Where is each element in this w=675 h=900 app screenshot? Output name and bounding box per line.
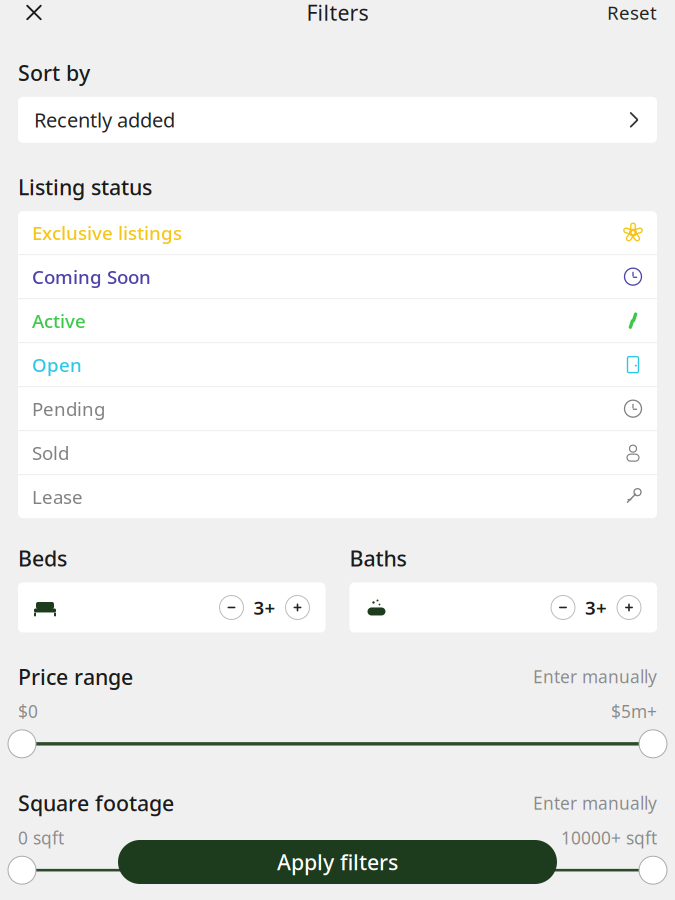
staticText: 10000+ sqft — [561, 826, 657, 849]
staticText: Exclusive listings — [32, 220, 182, 245]
staticText: Recently added — [34, 106, 175, 133]
staticText: $5m+ — [611, 700, 657, 723]
button[interactable]: Open — [18, 343, 657, 386]
staticText: Baths — [349, 544, 406, 572]
staticText: Square footage — [18, 789, 174, 817]
button[interactable]: Apply filters — [118, 840, 557, 884]
button[interactable]: Enter manually — [533, 665, 657, 688]
button[interactable]: Active — [18, 299, 657, 342]
staticText: Enter manually — [533, 665, 657, 688]
button[interactable]: Recently added — [18, 97, 657, 143]
button[interactable]: Coming Soon — [18, 255, 657, 298]
staticText: Enter manually — [533, 791, 657, 814]
staticText: Filters — [306, 0, 368, 27]
staticText: $0 — [18, 700, 38, 723]
button[interactable]: Sold — [18, 431, 657, 474]
staticText: Reset — [607, 0, 657, 25]
button[interactable]: Enter manually — [533, 791, 657, 814]
staticText: Sort by — [18, 58, 90, 87]
button[interactable]: Pending — [18, 387, 657, 430]
button[interactable]: Decrease — [549, 593, 577, 621]
staticText: Apply filters — [277, 848, 398, 876]
button[interactable]: Close — [12, 0, 56, 34]
staticText: Open — [32, 352, 82, 377]
button[interactable]: Decrease — [217, 593, 245, 621]
staticText: Price range — [18, 662, 133, 691]
staticText: Lease — [32, 484, 83, 509]
staticText: Pending — [32, 396, 105, 421]
button[interactable]: Exclusive listings — [18, 211, 657, 254]
button[interactable]: Increase — [283, 593, 311, 621]
button[interactable]: Increase — [615, 593, 643, 621]
staticText: Active — [32, 308, 86, 333]
staticText: Beds — [18, 544, 67, 572]
staticText: 0 sqft — [18, 826, 64, 849]
staticText: Sold — [32, 440, 69, 465]
staticText: Coming Soon — [32, 264, 151, 289]
staticText: 3+ — [253, 595, 275, 620]
button[interactable]: Reset — [601, 0, 663, 34]
staticText: Listing status — [18, 173, 152, 201]
button[interactable]: Lease — [18, 475, 657, 518]
staticText: 3+ — [585, 595, 607, 620]
